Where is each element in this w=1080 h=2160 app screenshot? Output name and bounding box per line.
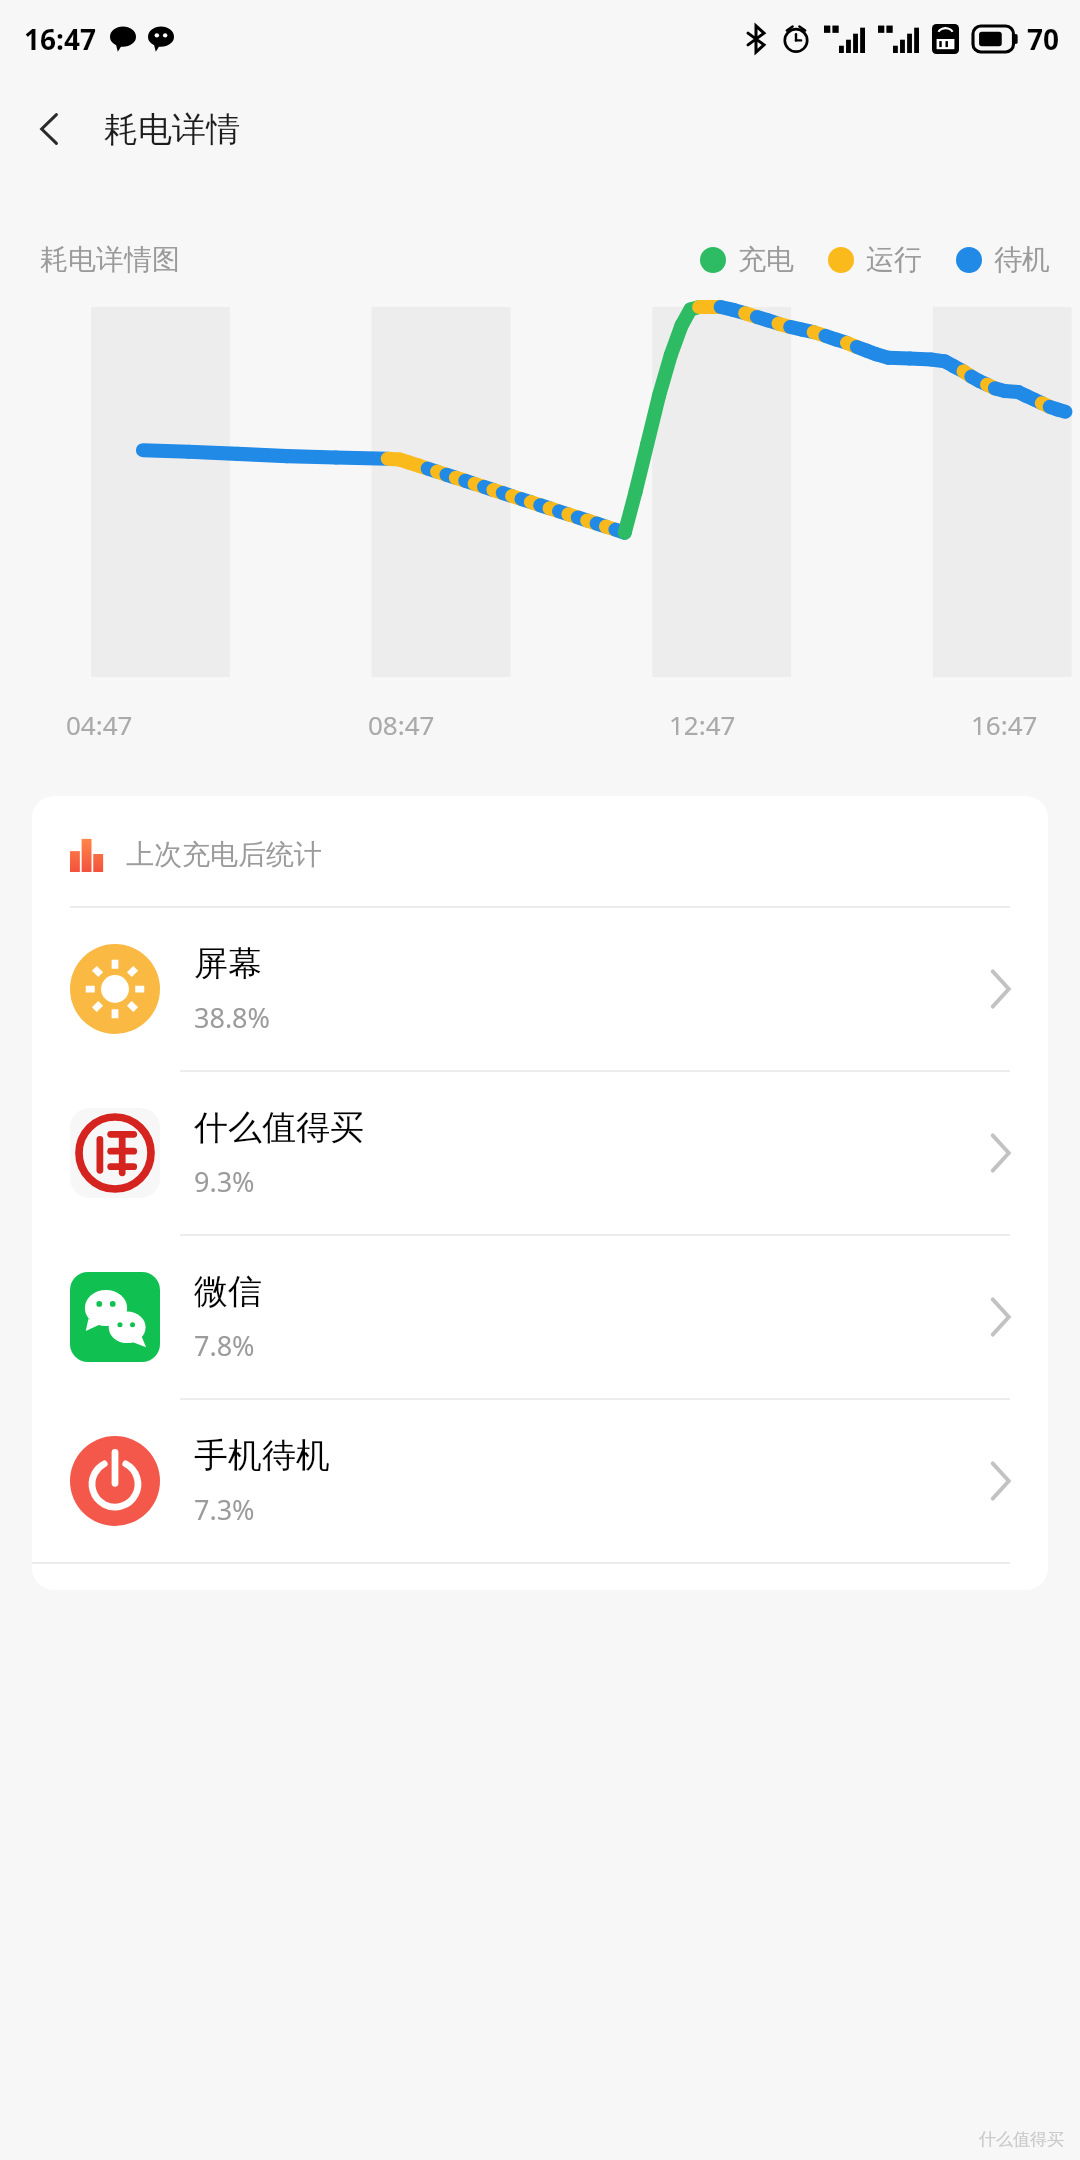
staticText: 充电 — [738, 242, 794, 277]
staticText: 屏幕 — [194, 942, 262, 985]
staticText: 9.3% — [194, 1163, 255, 1200]
staticText: 12:47 — [669, 707, 736, 742]
staticText: 待机 — [994, 242, 1050, 277]
staticText: 手机待机 — [194, 1434, 330, 1477]
button[interactable]: 手机待机 — [32, 1400, 1048, 1562]
staticText: 38.8% — [194, 999, 271, 1036]
staticText: 04:47 — [66, 707, 133, 742]
staticText: 16:47 — [24, 20, 96, 58]
staticText: 08:47 — [368, 707, 435, 742]
staticText: 耗电详情 — [104, 108, 240, 151]
staticText: 16:47 — [971, 707, 1038, 742]
staticText: 70 — [1027, 20, 1060, 58]
staticText: 7.3% — [194, 1491, 255, 1528]
staticText: 微信 — [194, 1270, 262, 1313]
staticText: 什么值得买 — [979, 2129, 1064, 2150]
button[interactable]: 微信 — [32, 1236, 1048, 1398]
button[interactable]: 屏幕 — [32, 908, 1048, 1070]
button[interactable]: 什么值得买 — [32, 1072, 1048, 1234]
staticText: 上次充电后统计 — [126, 837, 322, 872]
staticText: 什么值得买 — [194, 1106, 364, 1149]
staticText: 运行 — [866, 242, 922, 277]
button[interactable]: Back — [14, 93, 86, 165]
staticText: 7.8% — [194, 1327, 255, 1364]
staticText: 耗电详情图 — [40, 242, 180, 277]
